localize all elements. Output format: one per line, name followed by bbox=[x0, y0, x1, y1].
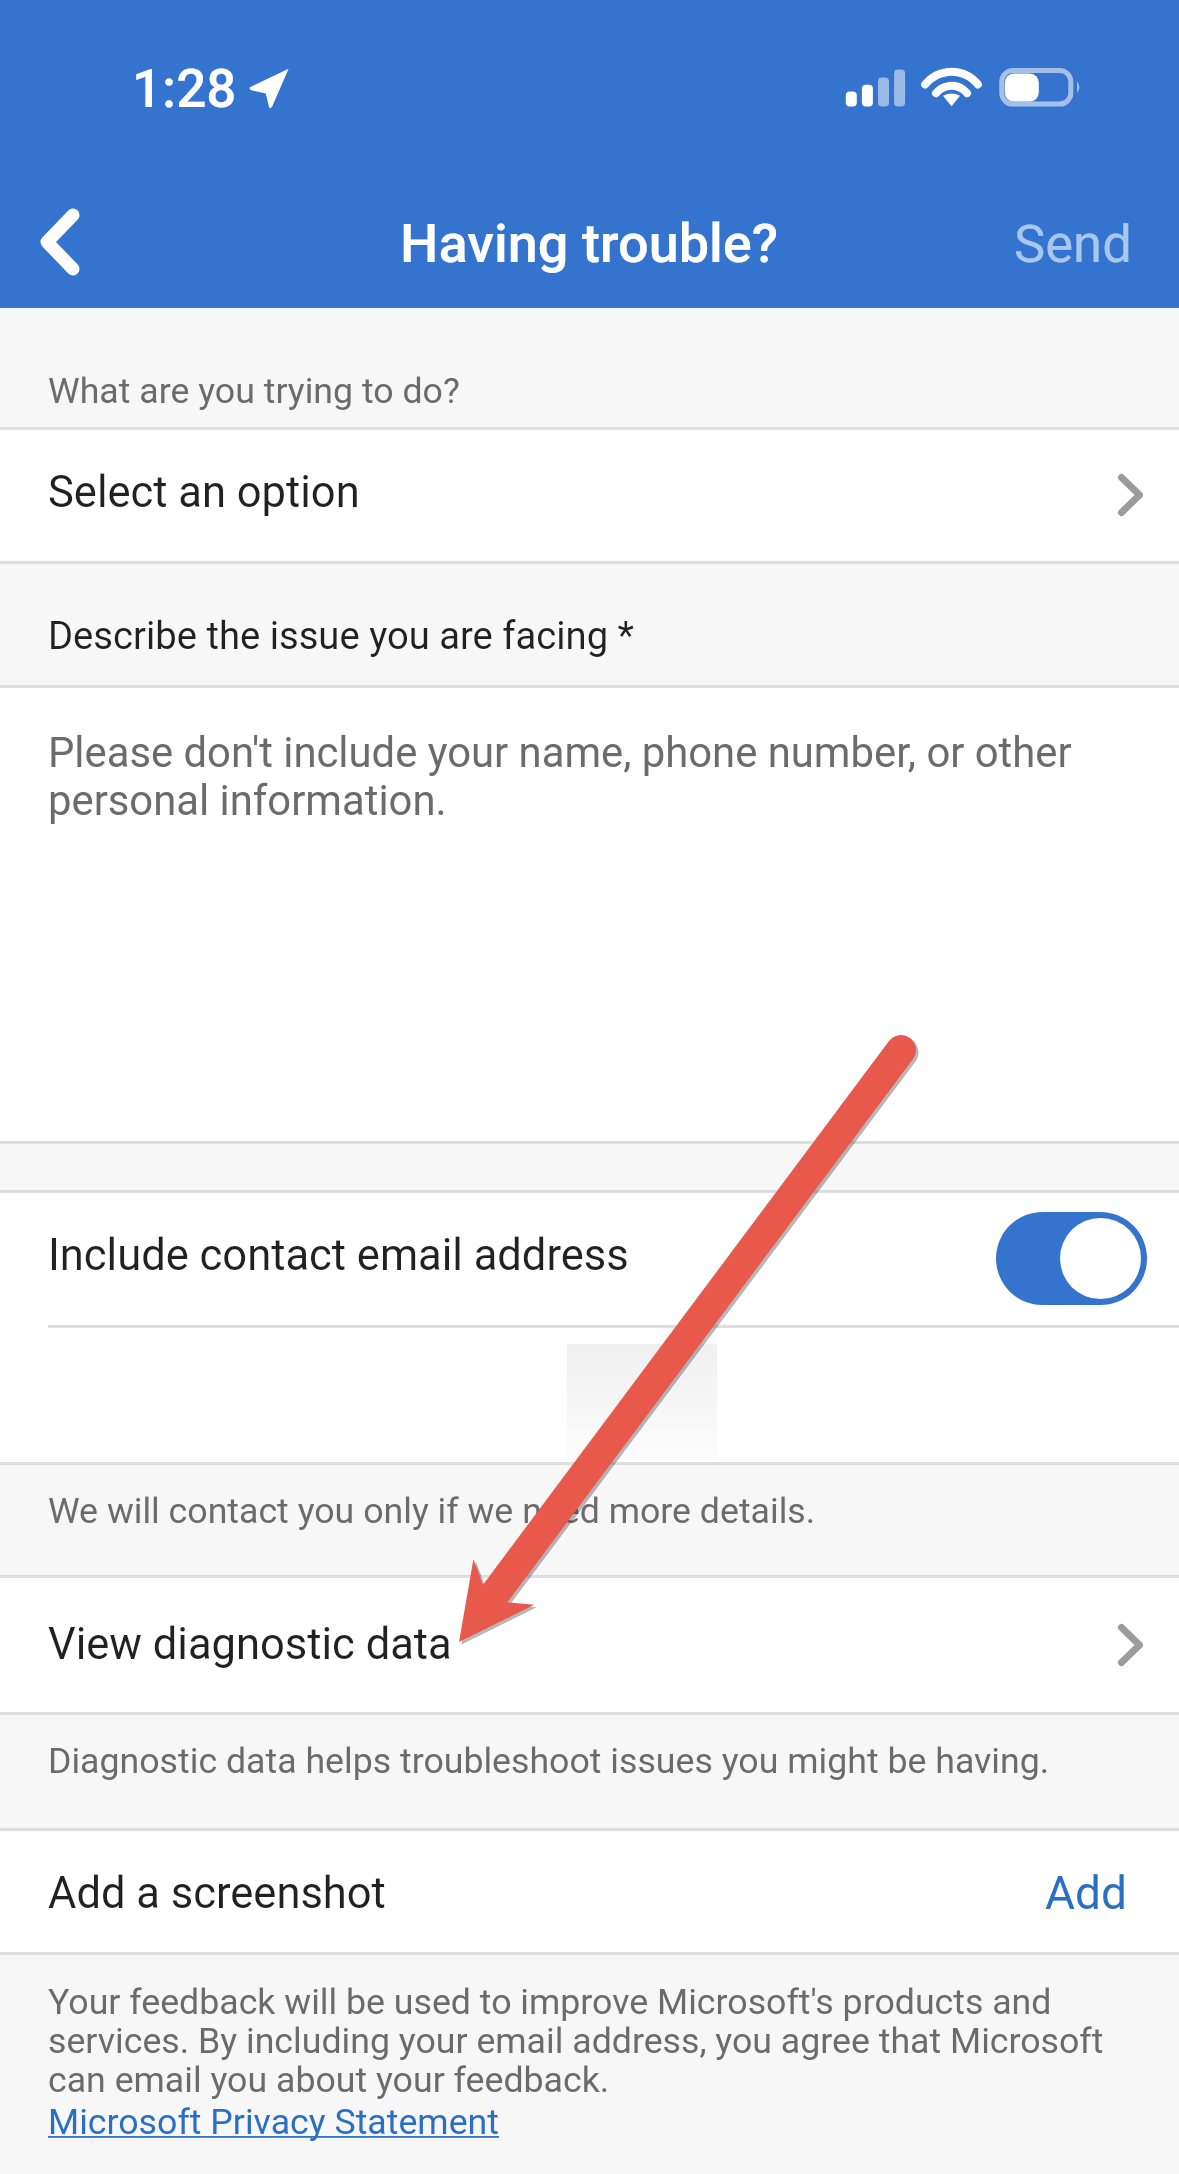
staticText: Your feedback will be used to improve Mi… bbox=[48, 1981, 1131, 2101]
button[interactable]: Select an option bbox=[0, 429, 1179, 561]
staticText: Diagnostic data helps troubleshoot issue… bbox=[48, 1740, 1050, 1782]
staticText: Add a screenshot bbox=[48, 1868, 386, 1919]
staticText: 1:28 bbox=[132, 58, 237, 120]
staticText: Select an option bbox=[48, 467, 360, 518]
staticText: View diagnostic data bbox=[48, 1619, 452, 1670]
staticText: What are you trying to do? bbox=[48, 370, 460, 412]
button[interactable]: Microsoft Privacy Statement bbox=[48, 2101, 499, 2143]
staticText: Having trouble? bbox=[400, 212, 779, 275]
button[interactable]: Add a screenshot bbox=[0, 1830, 1179, 1952]
staticText: Please don't include your name, phone nu… bbox=[48, 728, 1107, 825]
staticText: Add bbox=[1045, 1866, 1127, 1920]
button[interactable]: Send bbox=[995, 196, 1151, 292]
staticText: We will contact you only if we need more… bbox=[48, 1490, 816, 1532]
staticText: Send bbox=[1014, 213, 1132, 275]
staticText: Describe the issue you are facing * bbox=[48, 614, 635, 659]
staticText: Include contact email address bbox=[48, 1230, 629, 1281]
button[interactable]: Back bbox=[8, 190, 112, 294]
other: Include contact email address toggle bbox=[996, 1212, 1147, 1305]
button[interactable]: Include contact email address bbox=[0, 1192, 1179, 1325]
button[interactable]: View diagnostic data bbox=[0, 1577, 1179, 1712]
